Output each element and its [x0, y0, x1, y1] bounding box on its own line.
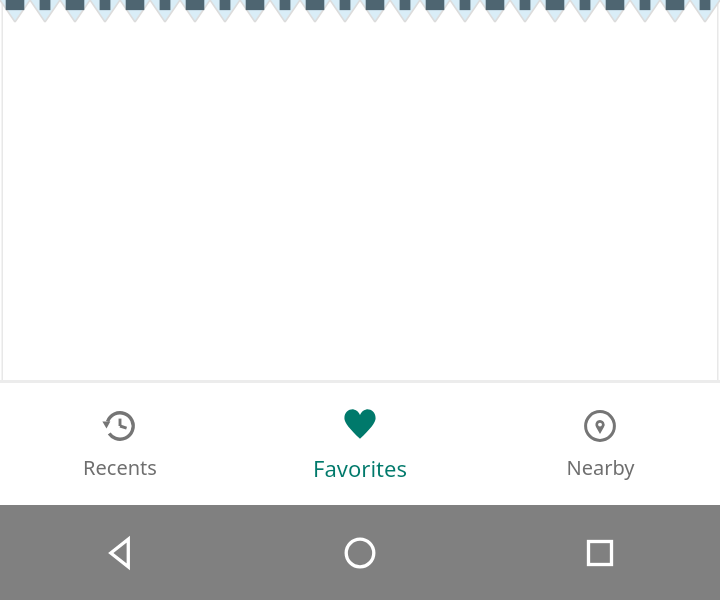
staticText: Nearby [566, 454, 635, 481]
button[interactable]: Back [0, 505, 240, 600]
staticText: Recents [83, 454, 157, 481]
button[interactable]: Recent apps [480, 505, 720, 600]
button[interactable]: Favorites [240, 380, 480, 505]
button[interactable]: Nearby [480, 380, 720, 505]
button[interactable]: Home [240, 505, 480, 600]
button[interactable]: Recents [0, 380, 240, 505]
staticText: Favorites [313, 453, 407, 483]
